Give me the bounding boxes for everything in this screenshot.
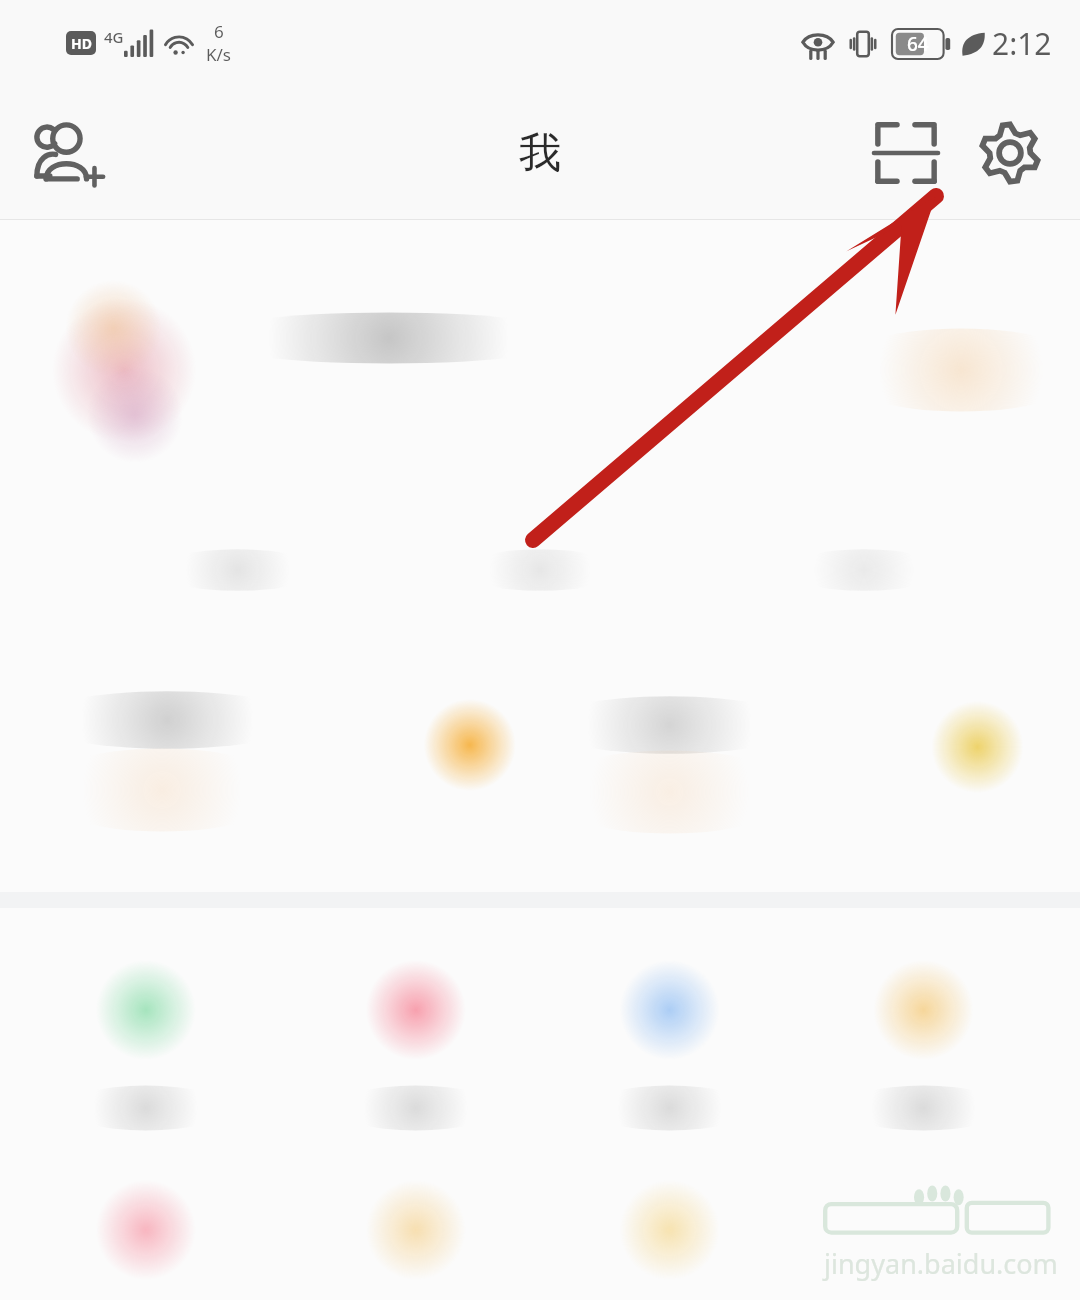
button[interactable]: Add friend: [22, 105, 118, 201]
staticText: jingyan.baidu.com: [824, 1245, 1058, 1282]
button[interactable]: [0, 908, 1080, 1300]
staticText: K/s: [206, 43, 231, 66]
button[interactable]: Scan QR code: [854, 101, 958, 205]
button[interactable]: [0, 220, 1080, 892]
staticText: HD: [71, 34, 92, 53]
staticText: 我: [519, 127, 561, 180]
staticText: 64: [907, 31, 929, 57]
staticText: 2:12: [992, 23, 1052, 64]
staticText: 6: [214, 20, 224, 43]
staticText: 4G: [104, 27, 124, 47]
button[interactable]: Settings: [958, 101, 1062, 205]
